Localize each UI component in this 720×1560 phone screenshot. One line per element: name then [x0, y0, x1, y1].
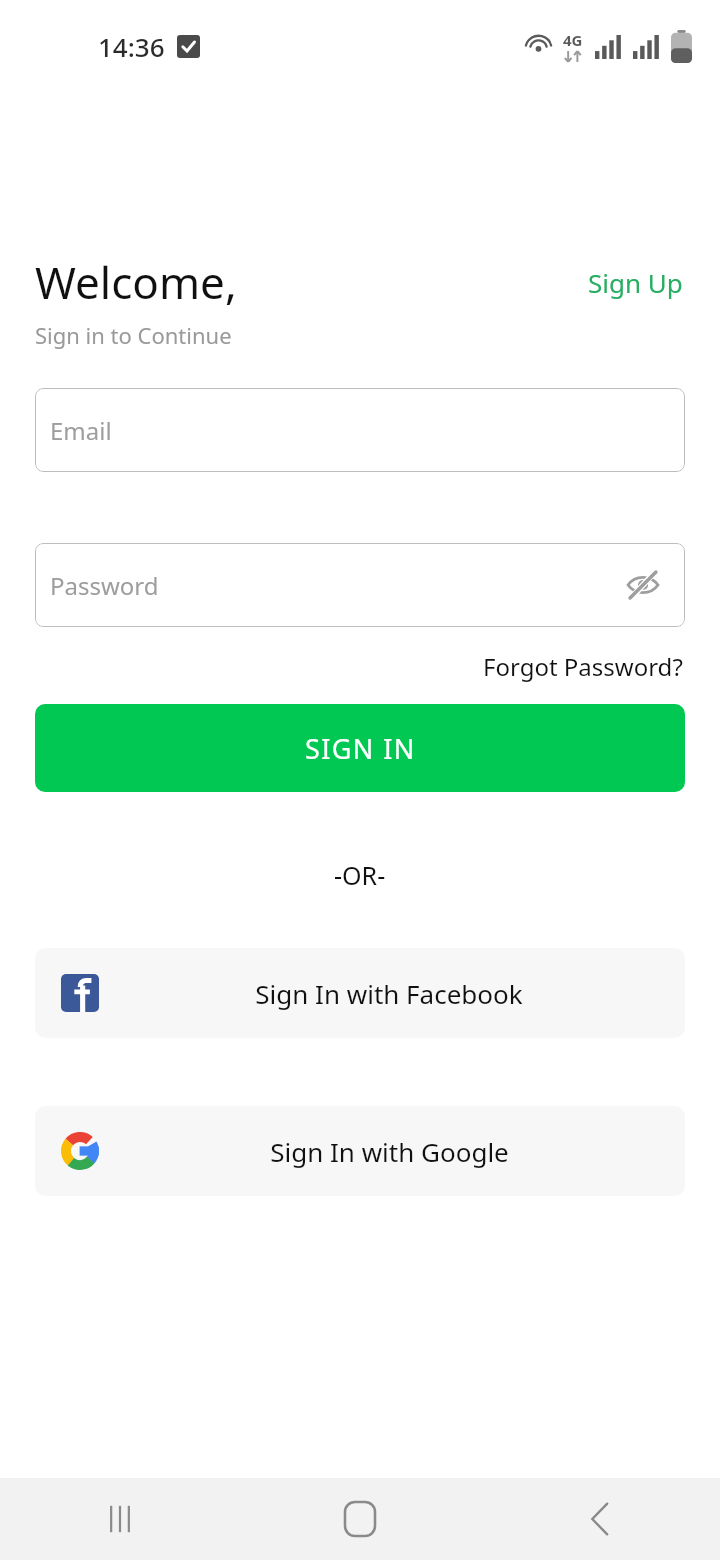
- button[interactable]: Recent apps: [0, 1478, 240, 1560]
- button[interactable]: Home: [240, 1478, 480, 1560]
- button[interactable]: Forgot Password?: [481, 647, 685, 686]
- staticText: 4G: [563, 30, 583, 50]
- staticText: Sign in to Continue: [35, 320, 232, 350]
- button[interactable]: Back: [480, 1478, 720, 1560]
- staticText: SIGN IN: [305, 730, 416, 767]
- staticText: Sign In with Google: [270, 1134, 509, 1169]
- staticText: 14:36: [98, 29, 165, 64]
- button[interactable]: Password: [35, 543, 685, 627]
- button[interactable]: SIGN IN: [35, 704, 685, 792]
- staticText: Sign Up: [588, 265, 683, 300]
- staticText: Password: [50, 569, 159, 602]
- staticText: -OR-: [334, 858, 386, 892]
- staticText: Welcome,: [35, 252, 237, 312]
- button[interactable]: Email: [35, 388, 685, 472]
- button[interactable]: Sign Up: [586, 261, 685, 304]
- staticText: Sign In with Facebook: [255, 976, 523, 1011]
- button[interactable]: Sign In with Facebook: [35, 948, 685, 1038]
- button[interactable]: Show password: [623, 565, 663, 605]
- staticText: Email: [50, 414, 112, 447]
- button[interactable]: Sign In with Google: [35, 1106, 685, 1196]
- staticText: Forgot Password?: [483, 650, 683, 683]
